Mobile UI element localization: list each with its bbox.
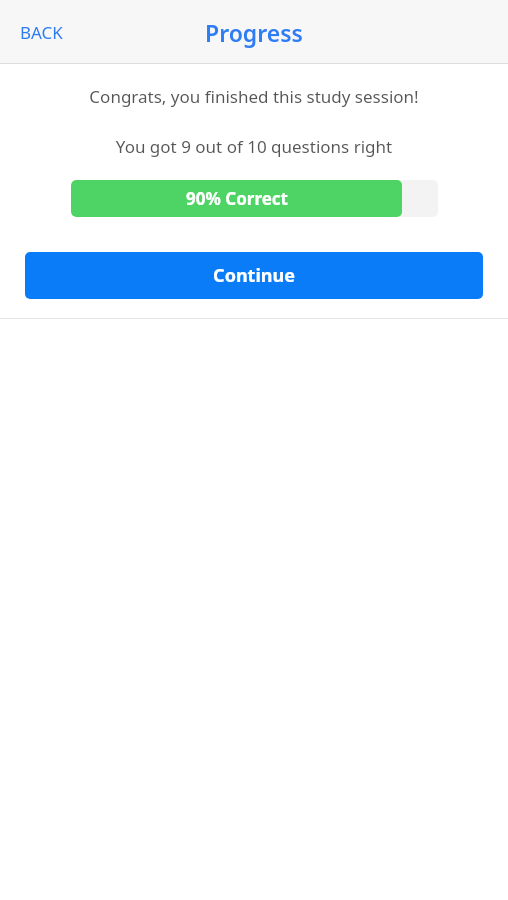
staticText: Continue: [213, 263, 295, 288]
staticText: Congrats, you finished this study sessio…: [0, 85, 508, 108]
staticText: BACK: [20, 21, 63, 44]
button[interactable]: BACK: [12, 13, 71, 52]
staticText: 90% Correct: [186, 187, 288, 210]
button[interactable]: Continue: [25, 252, 483, 299]
staticText: Progress: [205, 17, 303, 48]
staticText: You got 9 out of 10 questions right: [0, 135, 508, 158]
